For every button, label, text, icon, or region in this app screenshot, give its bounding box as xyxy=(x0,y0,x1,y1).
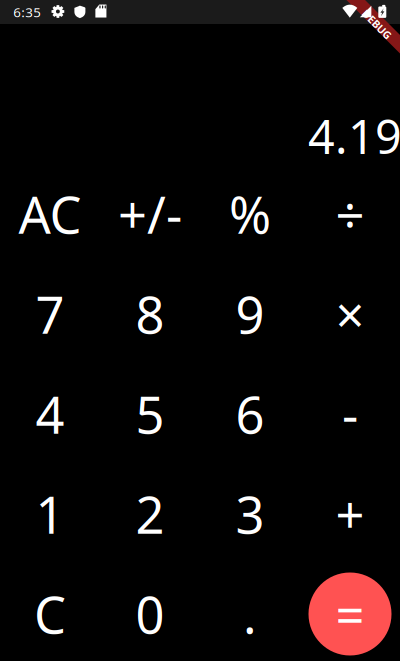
button[interactable]: 7 xyxy=(0,264,100,364)
button[interactable]: +/- xyxy=(100,164,200,264)
staticText: +/- xyxy=(118,180,182,248)
staticText: 7 xyxy=(35,280,64,348)
button[interactable]: + xyxy=(300,464,400,564)
staticText: 3 xyxy=(235,480,264,548)
button[interactable]: 5 xyxy=(100,364,200,464)
button[interactable]: C xyxy=(0,564,100,661)
button[interactable]: - xyxy=(300,364,400,464)
staticText: 9 xyxy=(235,280,264,348)
button[interactable]: 6 xyxy=(200,364,300,464)
staticText: 1 xyxy=(35,480,64,548)
staticText: C xyxy=(34,580,66,648)
button[interactable]: 3 xyxy=(200,464,300,564)
staticText: 4 xyxy=(35,380,64,448)
staticText: AC xyxy=(18,180,81,248)
staticText: 5 xyxy=(135,380,164,448)
staticText: 0 xyxy=(135,580,164,648)
staticText: . xyxy=(243,580,257,648)
staticText: × xyxy=(335,280,364,348)
staticText: 6:35 xyxy=(13,3,41,21)
staticText: = xyxy=(335,580,364,648)
button[interactable]: 8 xyxy=(100,264,200,364)
button[interactable]: 2 xyxy=(100,464,200,564)
staticText: 6 xyxy=(235,380,264,448)
staticText: 8 xyxy=(135,280,164,348)
staticText: 4.19 xyxy=(308,105,400,167)
button[interactable]: . xyxy=(200,564,300,661)
button[interactable]: × xyxy=(300,264,400,364)
button[interactable]: 4 xyxy=(0,364,100,464)
button[interactable]: 9 xyxy=(200,264,300,364)
button[interactable]: 0 xyxy=(100,564,200,661)
button[interactable]: ÷ xyxy=(300,164,400,264)
button[interactable]: Equals xyxy=(300,564,400,661)
button[interactable]: % xyxy=(200,164,300,264)
staticText: - xyxy=(342,380,358,448)
staticText: 2 xyxy=(135,480,164,548)
staticText: + xyxy=(335,480,364,548)
button[interactable]: AC xyxy=(0,164,100,264)
staticText: % xyxy=(229,180,271,248)
staticText: DEBUG xyxy=(358,17,395,32)
button[interactable]: 1 xyxy=(0,464,100,564)
staticText: ÷ xyxy=(335,180,364,248)
